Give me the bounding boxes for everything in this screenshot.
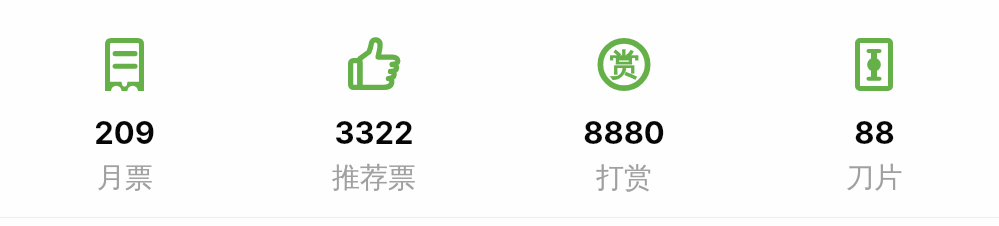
staticText: 3322 [334, 114, 414, 152]
staticText: 推荐票 [332, 160, 416, 195]
other: 刀片 [855, 38, 893, 91]
staticText: 88 [854, 114, 895, 152]
button[interactable]: 月票 [0, 0, 249, 226]
staticText: 8880 [583, 114, 665, 152]
other: 推荐票 [348, 39, 401, 90]
button[interactable]: 打赏 [499, 0, 749, 226]
staticText: 打赏 [596, 160, 652, 195]
staticText: 209 [94, 114, 155, 152]
button[interactable]: 推荐票 [249, 0, 499, 226]
staticText: 赏 [609, 46, 639, 84]
staticText: 刀片 [846, 160, 902, 195]
other: 打赏 [597, 38, 651, 91]
staticText: 月票 [97, 160, 153, 195]
other: 月票 [105, 38, 144, 91]
button[interactable]: 刀片 [749, 0, 999, 226]
